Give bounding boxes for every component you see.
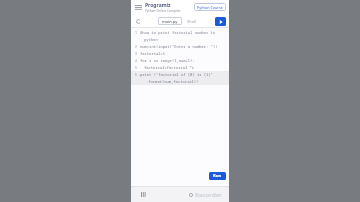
staticText: print ("factorial of {0} is {1}" [140,72,213,77]
staticText: Python Online Compiler [145,9,181,13]
staticText: 5 [135,65,138,70]
staticText: factorial=1 [140,51,166,56]
staticText: Run [213,173,222,179]
button[interactable]: main.py [158,17,182,25]
button[interactable]: Shell [185,17,198,25]
staticText: 4 [135,58,138,63]
button[interactable]: Recent apps [138,189,148,199]
staticText: Recorder [195,191,222,199]
staticText: 2 [135,44,138,49]
button[interactable]: Home [186,190,195,199]
staticText: .format(num,factorial)) [146,79,199,84]
staticText: 1 [135,30,138,35]
staticText: #how to print factorial number in [140,30,216,35]
button[interactable]: Reset code [134,17,142,25]
staticText: num=int(input("Enter a number: ")) [140,44,218,49]
button[interactable]: Run [209,172,226,180]
staticText: factorial=factorial *i [144,65,195,70]
button[interactable]: Menu [134,3,143,12]
staticText: Shell [187,19,196,24]
staticText: 3 [135,51,138,56]
staticText: Python Course [197,5,223,10]
staticText: main.py [162,19,178,24]
staticText: for i in range(1,num+1): [140,58,195,63]
staticText: 6 [135,72,138,77]
button[interactable]: Run code [215,17,226,26]
staticText: python [144,37,158,42]
staticText: Programiz [145,2,171,9]
button[interactable]: Python Course [194,3,226,11]
